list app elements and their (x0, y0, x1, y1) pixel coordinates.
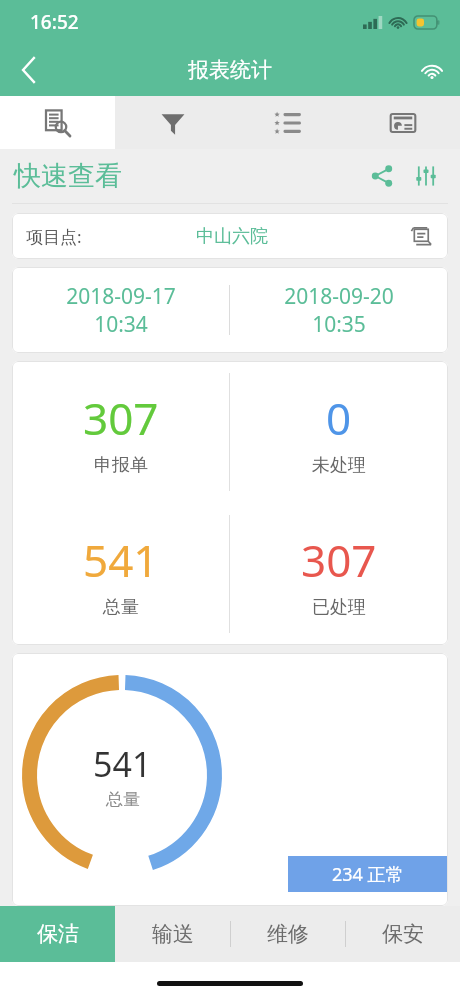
button[interactable]: 维修 (231, 906, 345, 962)
staticText: 307 (83, 388, 159, 448)
staticText: 申报单 (94, 454, 148, 477)
staticText: 维修 (267, 921, 309, 947)
staticText: 快速查看 (14, 159, 122, 193)
button[interactable]: 输送 (116, 906, 230, 962)
staticText: 项目点: (26, 225, 82, 248)
button[interactable]: Share (362, 156, 402, 196)
button[interactable]: 307 (230, 503, 448, 645)
staticText: 报表统计 (188, 57, 272, 83)
staticText: 保洁 (37, 921, 79, 947)
button[interactable]: 2018-09-20 10:35 (230, 267, 448, 353)
button[interactable]: Filter (115, 96, 230, 149)
button[interactable]: Settings (406, 156, 446, 196)
button[interactable]: 保洁 (0, 906, 115, 962)
staticText: 541 (93, 741, 152, 787)
button[interactable]: 307 (12, 361, 229, 503)
staticText: 0 (326, 388, 352, 448)
staticText: 16:52 (30, 9, 79, 35)
staticText: 总量 (103, 596, 139, 619)
staticText: 保安 (382, 921, 424, 947)
button[interactable]: Total chart (22, 675, 222, 875)
button[interactable]: 保安 (346, 906, 460, 962)
button[interactable]: Chart card (345, 96, 460, 149)
staticText: 2018-09-20 10:35 (284, 282, 394, 338)
staticText: 已处理 (312, 596, 366, 619)
button[interactable]: 541 (12, 503, 229, 645)
staticText: 未处理 (312, 454, 366, 477)
button[interactable]: Ranking list (230, 96, 345, 149)
button[interactable]: 234 正常 (288, 856, 448, 892)
staticText: 总量 (106, 789, 140, 810)
button[interactable]: Search reports (0, 96, 115, 149)
button[interactable]: 2018-09-17 10:34 (12, 267, 229, 353)
staticText: 234 正常 (332, 862, 404, 887)
staticText: 307 (301, 530, 377, 590)
staticText: 中山六院 (196, 225, 268, 248)
button[interactable]: Back (0, 44, 56, 96)
staticText: 541 (83, 530, 159, 590)
staticText: 2018-09-17 10:34 (66, 282, 176, 338)
button[interactable]: 项目点: (12, 213, 448, 259)
staticText: 输送 (152, 921, 194, 947)
button[interactable]: WiFi status (404, 44, 460, 96)
button[interactable]: 0 (230, 361, 448, 503)
